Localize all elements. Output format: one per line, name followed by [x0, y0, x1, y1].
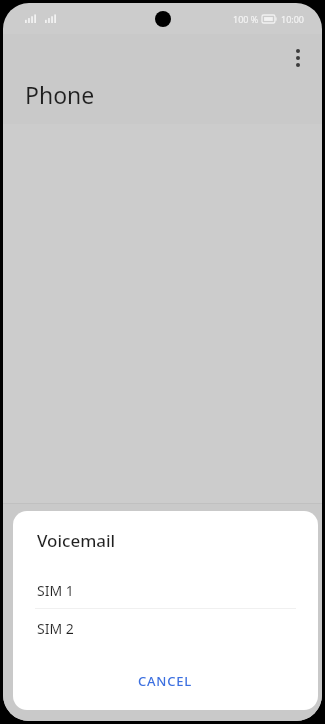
staticText: Phone: [41, 697, 72, 711]
button[interactable]: Favourites: [216, 687, 322, 721]
staticText: Voicemail: [37, 529, 116, 552]
staticText: 100 %: [233, 13, 259, 25]
button[interactable]: SIM 1: [13, 572, 318, 608]
staticText: 4: [50, 574, 64, 607]
button[interactable]: 2: [110, 512, 216, 569]
staticText: CANCEL: [138, 672, 193, 690]
staticText: Phone: [25, 79, 95, 110]
button[interactable]: 6: [216, 569, 322, 626]
staticText: SIM 1: [37, 581, 74, 600]
button[interactable]: 8: [110, 626, 216, 683]
button[interactable]: 9: [216, 626, 322, 683]
staticText: SIM 2: [37, 619, 74, 638]
staticText: 1: [50, 518, 64, 551]
button[interactable]: CANCEL: [124, 666, 207, 696]
button[interactable]: More options: [280, 40, 316, 76]
button[interactable]: 4: [3, 569, 110, 626]
staticText: Favourites: [245, 697, 294, 711]
button[interactable]: Contacts: [110, 687, 216, 721]
button[interactable]: 1: [3, 512, 110, 569]
button[interactable]: 3: [216, 512, 322, 569]
button[interactable]: Phone: [3, 687, 110, 721]
staticText: 10:00: [281, 13, 305, 25]
button[interactable]: SIM 2: [13, 609, 318, 647]
button[interactable]: 7: [3, 626, 110, 683]
staticText: 7: [50, 631, 64, 664]
staticText: Contacts: [143, 697, 184, 711]
staticText: TUV: [153, 667, 174, 679]
